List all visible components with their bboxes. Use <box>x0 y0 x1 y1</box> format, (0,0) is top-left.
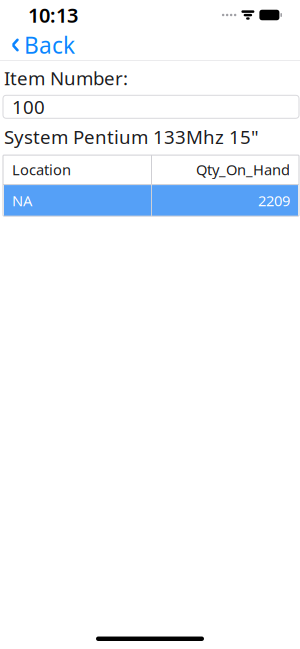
staticText: 100 <box>12 94 45 119</box>
staticText: NA <box>12 191 32 210</box>
button[interactable]: Back <box>0 30 87 60</box>
staticText: Back <box>24 30 75 60</box>
staticText: Qty_On_Hand <box>196 160 290 179</box>
staticText: 10:13 <box>28 2 78 28</box>
staticText: Location <box>12 160 71 179</box>
staticText: System Pentium 133Mhz 15" <box>4 124 259 149</box>
button[interactable]: NA <box>4 185 298 216</box>
staticText: Item Number: <box>4 65 128 90</box>
staticText: 2209 <box>258 191 290 210</box>
